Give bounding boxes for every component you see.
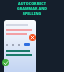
staticText: SPELLING — [0, 11, 64, 16]
button[interactable]: Correct — [2, 59, 9, 66]
button[interactable]: Error — [29, 34, 36, 41]
staticText: GRAMMAR AND — [0, 6, 64, 11]
staticText: AUTOCORRECT — [0, 1, 64, 6]
button[interactable]: Send — [24, 43, 30, 46]
